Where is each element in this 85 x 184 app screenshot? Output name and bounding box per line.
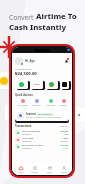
button[interactable]: Notifications bbox=[63, 58, 69, 64]
staticText: View all › bbox=[60, 125, 69, 128]
staticText: Transactions bbox=[15, 124, 32, 128]
staticText: Completed bbox=[22, 147, 32, 149]
staticText: Cards bbox=[47, 171, 52, 173]
button[interactable]: Sell Airtime bbox=[15, 98, 29, 107]
staticText: 12 Apr bbox=[63, 147, 69, 149]
staticText: Withdraw bbox=[46, 104, 55, 107]
button[interactable]: Glo Convert to Cash bbox=[15, 144, 69, 149]
staticText: Completed bbox=[22, 140, 32, 142]
staticText: Yesterday bbox=[60, 140, 69, 142]
staticText: Convert your airtime to cash in seconds bbox=[26, 116, 62, 119]
button[interactable]: airtel bbox=[30, 80, 43, 89]
staticText: Sell Airtime bbox=[17, 104, 28, 107]
staticText: Instant bbox=[26, 112, 36, 116]
button[interactable]: Home bbox=[14, 166, 27, 173]
staticText: Glo Convert to Cash bbox=[22, 144, 43, 147]
staticText: Recommended bbox=[38, 113, 52, 116]
button[interactable]: Instant bbox=[15, 110, 69, 121]
button[interactable]: Airtel Data bbox=[15, 137, 69, 142]
staticText: Airtime To bbox=[36, 11, 77, 22]
staticText: Home bbox=[18, 171, 24, 173]
button[interactable]: glo bbox=[45, 80, 58, 89]
button[interactable]: Withdraw bbox=[43, 98, 57, 107]
staticText: MTN Airtime Sale bbox=[22, 130, 41, 133]
staticText: Pay Bills bbox=[59, 104, 67, 107]
button[interactable]: Convert bbox=[28, 166, 41, 173]
button[interactable]: Buy Data bbox=[29, 98, 43, 107]
staticText: Convert bbox=[9, 13, 36, 22]
button[interactable]: Cards bbox=[43, 166, 56, 173]
button[interactable]: View all › bbox=[60, 125, 69, 128]
staticText: Buy Data bbox=[32, 104, 41, 107]
staticText: Today bbox=[64, 133, 69, 135]
button[interactable]: 9mobile bbox=[60, 80, 69, 89]
staticText: Wallet Balance bbox=[15, 67, 32, 70]
staticText: Completed bbox=[22, 133, 32, 135]
staticText: +₦2,000 bbox=[60, 130, 69, 133]
staticText: Quick Actions bbox=[15, 93, 33, 97]
staticText: Hi, Ayo bbox=[25, 59, 35, 63]
button[interactable]: MTN bbox=[15, 80, 28, 89]
staticText: Cash Instantly bbox=[9, 22, 67, 33]
button[interactable]: MTN Airtime Sale bbox=[15, 130, 69, 135]
staticText: Profile bbox=[61, 171, 67, 173]
staticText: +₦1,200 bbox=[60, 144, 69, 147]
button[interactable]: Pay Bills bbox=[57, 98, 69, 107]
staticText: Convert bbox=[31, 171, 38, 173]
staticText: Airtel Data bbox=[22, 137, 34, 140]
staticText: airtel bbox=[34, 83, 40, 86]
staticText: -₦500 bbox=[63, 137, 69, 140]
button[interactable]: Profile bbox=[57, 166, 70, 173]
staticText: ₦24,500.00 bbox=[15, 71, 37, 77]
